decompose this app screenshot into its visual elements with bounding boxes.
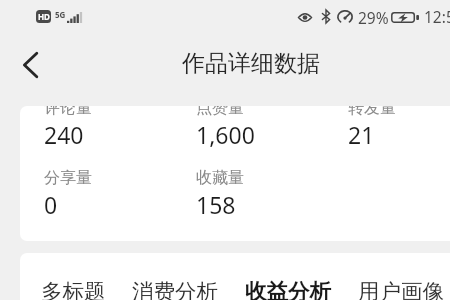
staticText: 240	[44, 119, 84, 150]
button[interactable]: Back	[8, 41, 52, 85]
staticText: HD	[38, 11, 50, 22]
staticText: 消费分析	[132, 278, 218, 300]
staticText: 收益分析	[245, 278, 331, 300]
staticText: 转发量	[348, 106, 396, 118]
staticText: 收藏量	[196, 168, 244, 188]
staticText: 多标题	[41, 278, 106, 300]
button[interactable]: 消费分析	[132, 277, 218, 300]
button[interactable]: 收益分析	[245, 277, 331, 300]
staticText: 12:5	[424, 6, 450, 27]
staticText: 29%	[358, 7, 389, 28]
staticText: 作品详细数据	[182, 49, 320, 78]
staticText: 分享量	[44, 168, 92, 188]
button[interactable]: 用户画像	[358, 277, 444, 300]
staticText: 21	[348, 119, 375, 150]
button[interactable]: 多标题	[41, 277, 106, 300]
staticText: 5G	[55, 9, 66, 20]
staticText: 158	[196, 189, 236, 220]
staticText: 0	[44, 189, 58, 220]
staticText: 点赞量	[196, 106, 244, 118]
staticText: 1,600	[196, 119, 255, 150]
staticText: 用户画像	[358, 278, 444, 300]
staticText: 评论量	[44, 106, 92, 118]
